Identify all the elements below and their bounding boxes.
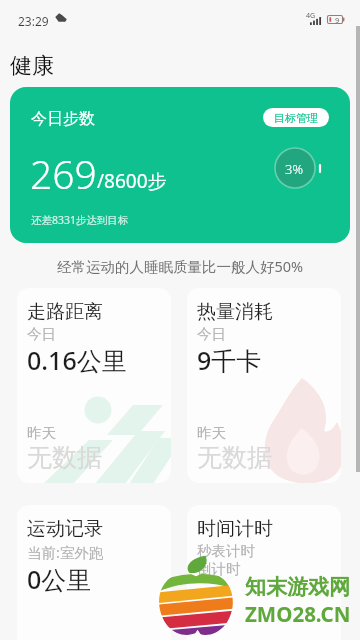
staticText: 无数据: [197, 442, 272, 473]
button[interactable]: 热量消耗: [187, 288, 341, 483]
staticText: 无数据: [27, 442, 102, 473]
staticText: 秒表计时: [197, 542, 255, 560]
staticText: 23:29: [18, 13, 49, 29]
staticText: 3%: [285, 160, 303, 178]
staticText: ZMO28.CN: [245, 600, 351, 628]
staticText: 今日步数: [31, 109, 95, 129]
staticText: 今日: [27, 325, 56, 343]
button[interactable]: 今日步数: [10, 87, 350, 243]
staticText: 0.16公里: [27, 343, 127, 377]
staticText: 0公里: [27, 562, 92, 596]
button[interactable]: 时间计时: [187, 505, 341, 640]
staticText: 倒计时: [197, 560, 241, 578]
staticText: 走路距离: [27, 300, 103, 324]
button[interactable]: 运动记录: [17, 505, 171, 640]
staticText: 运动记录: [27, 517, 103, 541]
staticText: 经常运动的人睡眠质量比一般人好50%: [57, 256, 304, 276]
staticText: 目标管理: [274, 111, 318, 125]
staticText: 昨天: [197, 424, 226, 442]
staticText: /8600步: [97, 168, 167, 194]
staticText: 热量消耗: [197, 300, 273, 324]
staticText: 9千卡: [197, 343, 262, 377]
button[interactable]: 目标管理: [263, 108, 329, 127]
staticText: 9: [335, 15, 340, 25]
staticText: 还差8331步达到目标: [31, 213, 129, 227]
staticText: 当前:室外跑: [27, 542, 104, 562]
staticText: 时间计时: [197, 517, 273, 541]
staticText: 昨天: [27, 424, 56, 442]
staticText: 知末游戏网: [245, 574, 350, 600]
staticText: 健康: [10, 52, 54, 80]
staticText: 4G: [306, 11, 316, 21]
staticText: 269: [30, 147, 97, 200]
button[interactable]: 走路距离: [17, 288, 171, 483]
staticText: 今日: [197, 325, 226, 343]
